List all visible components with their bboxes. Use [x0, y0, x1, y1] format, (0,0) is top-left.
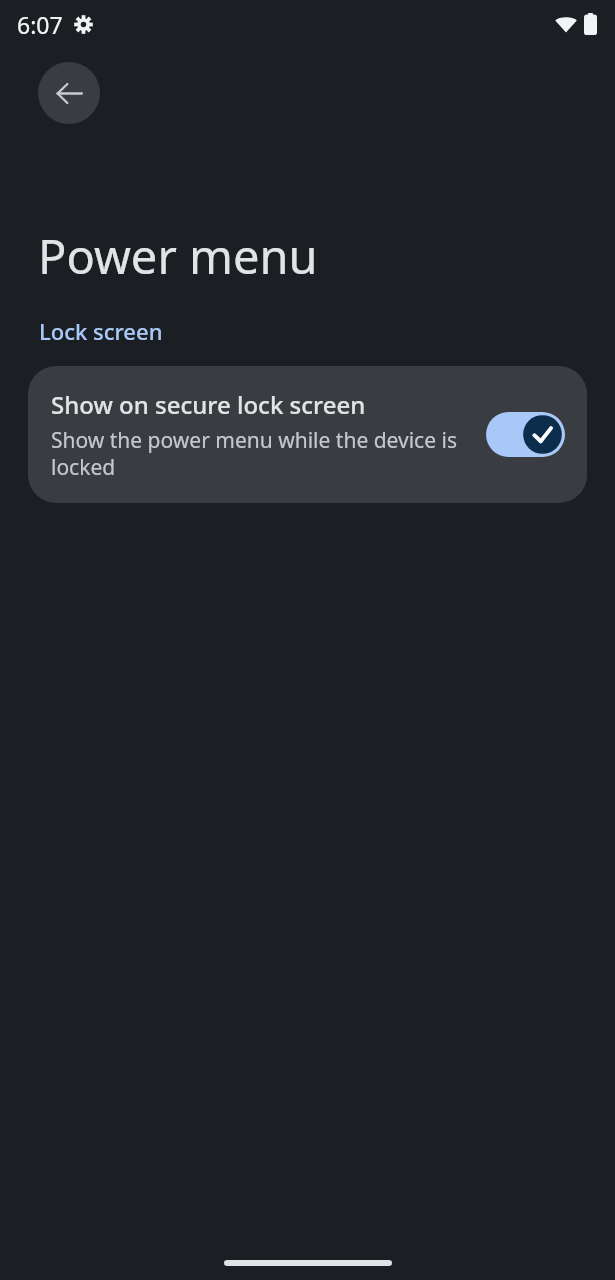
button[interactable]: Show on secure lock screen toggle	[486, 412, 565, 457]
staticText: Show the power menu while the device is …	[51, 426, 472, 481]
staticText: Power menu	[38, 224, 318, 288]
button[interactable]: Back	[38, 62, 100, 124]
staticText: Lock screen	[39, 316, 163, 346]
staticText: 6:07	[17, 9, 63, 40]
button[interactable]: Show on secure lock screen	[28, 366, 587, 503]
staticText: Show on secure lock screen	[51, 388, 366, 421]
